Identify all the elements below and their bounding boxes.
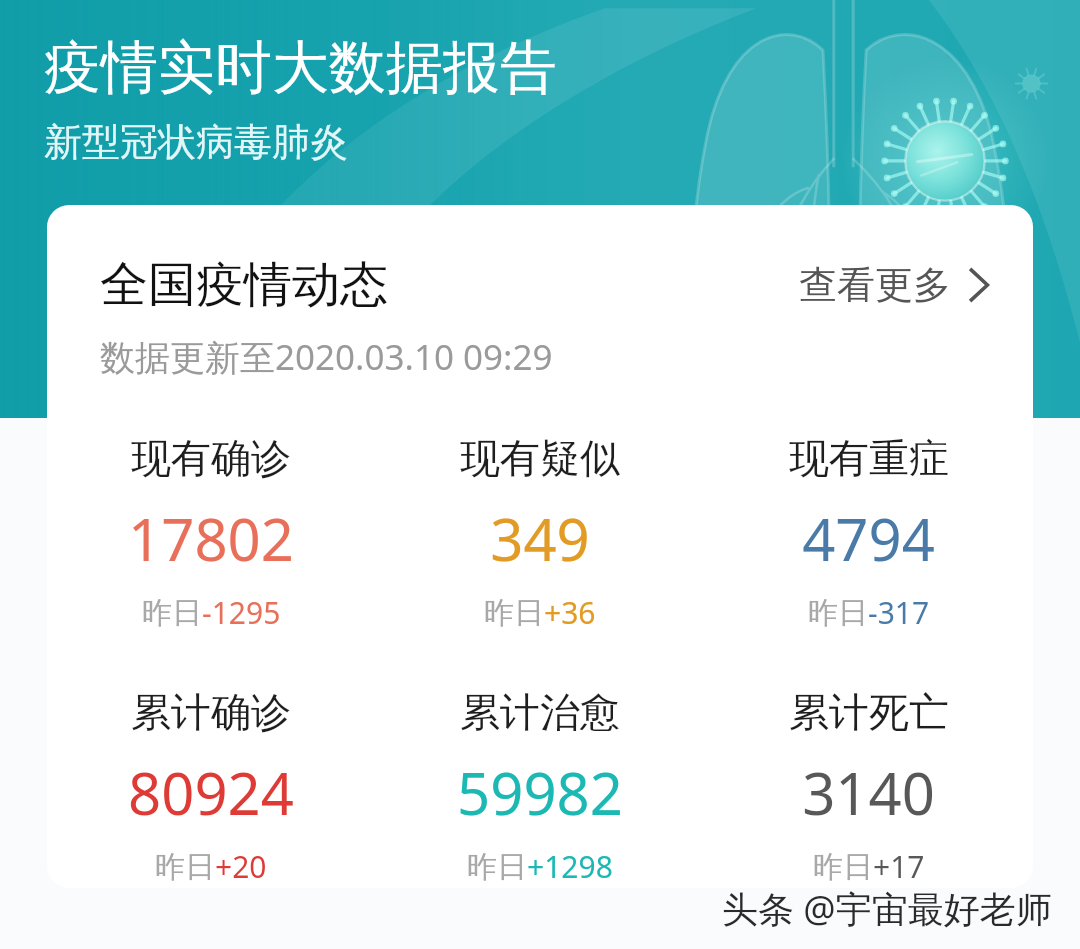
staticText: 4794 <box>802 499 935 578</box>
staticText: 59982 <box>457 753 623 832</box>
staticText: 昨日 <box>484 594 544 632</box>
button[interactable]: 累计确诊 <box>47 687 375 887</box>
staticText: +20 <box>215 846 267 887</box>
staticText: 3140 <box>802 753 935 832</box>
staticText: +17 <box>873 846 925 887</box>
staticText: 查看更多 <box>799 261 951 309</box>
button[interactable]: 累计治愈 <box>375 687 704 887</box>
staticText: 349 <box>490 499 590 578</box>
staticText: 17802 <box>128 499 294 578</box>
staticText: 昨日 <box>808 594 868 632</box>
staticText: 新型冠状病毒肺炎 <box>44 118 348 166</box>
staticText: 昨日 <box>813 848 873 886</box>
staticText: 数据更新至2020.03.10 09:29 <box>100 333 553 381</box>
staticText: 全国疫情动态 <box>100 255 388 315</box>
button[interactable]: 查看更多 <box>793 253 995 317</box>
button[interactable]: 现有确诊 <box>47 433 375 633</box>
staticText: 累计确诊 <box>131 687 291 737</box>
staticText: 疫情实时大数据报告 <box>44 32 557 104</box>
staticText: 累计死亡 <box>789 687 949 737</box>
staticText: +36 <box>544 592 596 633</box>
button[interactable]: 现有重症 <box>704 433 1033 633</box>
staticText: -1295 <box>202 592 281 633</box>
staticText: 昨日 <box>142 594 202 632</box>
staticText: 80924 <box>128 753 294 832</box>
staticText: 现有重症 <box>789 433 949 483</box>
staticText: 累计治愈 <box>460 687 620 737</box>
staticText: 昨日 <box>155 848 215 886</box>
staticText: +1298 <box>527 846 613 887</box>
button[interactable]: 现有疑似 <box>375 433 704 633</box>
staticText: 头条 @宇宙最好老师 <box>722 884 1052 933</box>
staticText: -317 <box>868 592 930 633</box>
staticText: 现有疑似 <box>460 433 620 483</box>
button[interactable]: 累计死亡 <box>704 687 1033 887</box>
staticText: 昨日 <box>467 848 527 886</box>
staticText: 现有确诊 <box>131 433 291 483</box>
